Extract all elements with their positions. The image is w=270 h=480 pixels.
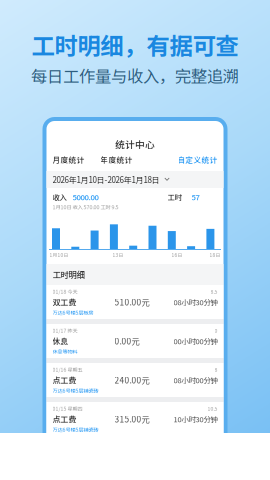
staticText: 工时	[167, 192, 181, 202]
staticText: 月度统计	[52, 154, 84, 165]
button[interactable]: 年度统计	[100, 154, 132, 165]
staticText: 5000.00	[72, 191, 98, 203]
staticText: 1月10日	[49, 251, 68, 258]
staticText: 万达6号楼5层板房	[52, 309, 93, 316]
button[interactable]: 01/15 星期四	[46, 402, 223, 436]
staticText: 自定义统计	[177, 154, 217, 165]
staticText: 0	[214, 327, 217, 334]
button[interactable]: 01/17 昨天	[46, 324, 223, 358]
staticText: 01/18 今天	[52, 288, 77, 295]
button[interactable]: 01/16 星期五	[46, 363, 223, 397]
staticText: 点工费	[52, 413, 76, 425]
staticText: 01/17 昨天	[52, 327, 77, 334]
staticText: 年度统计	[100, 154, 132, 165]
staticText: 休息	[52, 335, 68, 347]
staticText: 08小时00分钟	[173, 375, 217, 385]
staticText: 休息等物料	[52, 348, 77, 355]
staticText: 10.5	[207, 405, 217, 412]
staticText: 2026年1月10日-2026年1月18日	[52, 174, 159, 185]
staticText: 315.00元	[114, 413, 149, 425]
staticText: 统计中心	[115, 137, 155, 151]
staticText: 工时明细	[52, 268, 84, 280]
staticText: 57	[191, 191, 199, 203]
staticText: 13日	[112, 251, 123, 258]
staticText: 8	[214, 366, 217, 373]
staticText: 万达6号楼5层铺瓷砖	[52, 426, 98, 433]
button[interactable]: 01/18 今天	[46, 285, 223, 319]
staticText: 00小时00分钟	[173, 336, 217, 346]
staticText: 08小时30分钟	[173, 297, 217, 307]
staticText: 收入	[52, 192, 66, 202]
staticText: 每日工作量与收入，完整追溯	[31, 64, 239, 87]
staticText: 18日	[209, 251, 220, 258]
staticText: 万达6号楼5层铺瓷砖	[52, 387, 98, 394]
staticText: 01/15 星期四	[52, 405, 82, 412]
staticText: 10小时30分钟	[173, 414, 217, 424]
staticText: 16日	[171, 251, 182, 258]
staticText: 0.00元	[114, 335, 139, 347]
staticText: 点工费	[52, 374, 76, 386]
button[interactable]: 自定义统计	[177, 154, 217, 165]
staticText: 01/16 星期五	[52, 366, 82, 373]
staticText: 8.5	[210, 288, 217, 295]
button[interactable]: 2026年1月10日-2026年1月18日	[46, 171, 223, 188]
staticText: 双工费	[52, 296, 76, 308]
button[interactable]: 月度统计	[52, 154, 100, 165]
staticText: 510.00元	[114, 296, 149, 308]
staticText: 工时明细，有据可查	[31, 27, 238, 61]
staticText: 240.00元	[114, 374, 149, 386]
staticText: 1月10日 收入 570.00 工时 9.5	[52, 203, 118, 211]
